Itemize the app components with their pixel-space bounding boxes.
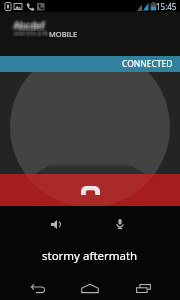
staticText: Abcdef	[15, 21, 46, 34]
staticText: 444 555 678	[14, 28, 49, 36]
staticText: 444 555 678	[12, 30, 47, 38]
staticText: 444 555 678	[15, 30, 50, 38]
staticText: 444 555 678	[12, 30, 47, 38]
staticText: CONNECTED	[122, 58, 173, 70]
staticText: Abcdef	[14, 17, 45, 30]
staticText: 444 555 678	[12, 31, 47, 39]
staticText: Abcdef	[16, 18, 47, 31]
staticText: 444 555 678	[15, 31, 50, 39]
staticText: Abcdef	[12, 20, 43, 33]
staticText: 444 555 678	[13, 30, 48, 38]
staticText: 444 555 678	[15, 31, 50, 39]
staticText: 444 555 678	[14, 30, 49, 38]
staticText: Abcdef	[14, 18, 45, 31]
staticText: 444 555 678	[13, 28, 48, 36]
button[interactable]: CONNECTED	[0, 56, 180, 72]
button[interactable]: Back	[22, 276, 54, 300]
staticText: 444 555 678	[15, 29, 50, 37]
staticText: Abcdef	[13, 19, 44, 32]
staticText: Abcdef	[16, 21, 47, 34]
staticText: Abcdef	[13, 18, 44, 31]
staticText: 444 555 678	[13, 28, 48, 36]
staticText: Abcdef	[11, 18, 42, 31]
staticText: Abcdef	[16, 17, 47, 30]
staticText: MOBILE	[49, 29, 78, 39]
staticText: Abcdef	[12, 21, 43, 34]
staticText: Abcdef	[15, 17, 46, 30]
button[interactable]: End call	[0, 174, 180, 206]
staticText: Abcdef	[16, 21, 47, 34]
staticText: Abcdef	[14, 20, 45, 33]
staticText: 444 555 678	[12, 31, 47, 39]
staticText: 444 555 678	[14, 30, 49, 38]
staticText: Abcdef	[14, 17, 45, 30]
staticText: 444 555 678	[15, 28, 50, 36]
staticText: Abcdef	[15, 19, 46, 32]
staticText: 444 555 678	[12, 31, 47, 39]
staticText: Abcdef	[14, 20, 45, 33]
staticText: Abcdef	[12, 17, 43, 30]
staticText: Abcdef	[15, 21, 46, 34]
staticText: 444 555 678	[12, 31, 47, 39]
staticText: Abcdef	[14, 18, 45, 31]
staticText: Abcdef	[11, 21, 42, 34]
staticText: 444 555 678	[14, 31, 49, 39]
staticText: Abcdef	[14, 19, 45, 32]
staticText: Abcdef	[11, 19, 42, 32]
staticText: Abcdef	[13, 21, 44, 34]
staticText: 444 555 678	[15, 28, 50, 36]
staticText: Abcdef	[13, 20, 44, 33]
staticText: 444 555 678	[13, 30, 48, 38]
staticText: 444 555 678	[12, 28, 47, 36]
staticText: Abcdef	[14, 21, 45, 34]
staticText: 444 555 678	[14, 31, 49, 39]
button[interactable]: Home	[74, 276, 106, 300]
staticText: 444 555 678	[13, 29, 48, 37]
staticText: Abcdef	[13, 17, 44, 30]
staticText: Abcdef	[11, 21, 42, 34]
staticText: 444 555 678	[15, 28, 50, 36]
staticText: Abcdef	[11, 17, 42, 30]
staticText: Abcdef	[15, 20, 46, 33]
staticText: 444 555 678	[14, 31, 49, 39]
staticText: Abcdef	[12, 18, 43, 31]
staticText: 444 555 678	[15, 30, 50, 38]
staticText: 444 555 678	[12, 29, 47, 37]
staticText: Abcdef	[12, 19, 43, 32]
staticText: 15:45	[156, 1, 177, 12]
staticText: Abcdef	[13, 17, 44, 30]
staticText: Abcdef	[12, 21, 43, 34]
staticText: 444 555 678	[15, 29, 50, 37]
staticText: Abcdef	[14, 17, 45, 30]
staticText: 444 555 678	[14, 30, 49, 38]
staticText: Abcdef	[14, 21, 45, 34]
staticText: 444 555 678	[14, 29, 49, 37]
staticText: stormy aftermath	[42, 248, 138, 264]
staticText: Abcdef	[11, 20, 42, 33]
staticText: Abcdef	[12, 17, 43, 30]
staticText: 444 555 678	[14, 31, 49, 39]
staticText: Abcdef	[15, 17, 46, 30]
staticText: 444 555 678	[15, 31, 50, 39]
staticText: Abcdef	[16, 20, 47, 33]
staticText: Abcdef	[14, 21, 45, 34]
staticText: 444 555 678	[12, 28, 47, 36]
staticText: Abcdef	[15, 18, 46, 31]
staticText: Abcdef	[16, 19, 47, 32]
staticText: 444 555 678	[15, 30, 50, 38]
staticText: 444 555 678	[12, 30, 47, 38]
staticText: 444 555 678	[15, 31, 50, 39]
staticText: 444 555 678	[15, 30, 50, 38]
staticText: 444 555 678	[14, 30, 49, 38]
button[interactable]: Recent apps	[127, 276, 159, 300]
staticText: Abcdef	[16, 17, 47, 30]
staticText: 444 555 678	[13, 31, 48, 39]
button[interactable]: Speaker	[36, 208, 76, 240]
staticText: 444 555 678	[15, 28, 50, 36]
staticText: 444 555 678	[12, 28, 47, 36]
button[interactable]: Mute microphone	[100, 208, 140, 240]
staticText: 444 555 678	[14, 28, 49, 36]
staticText: Abcdef	[14, 19, 45, 32]
staticText: 444 555 678	[13, 31, 48, 39]
staticText: 444 555 678	[14, 28, 49, 36]
